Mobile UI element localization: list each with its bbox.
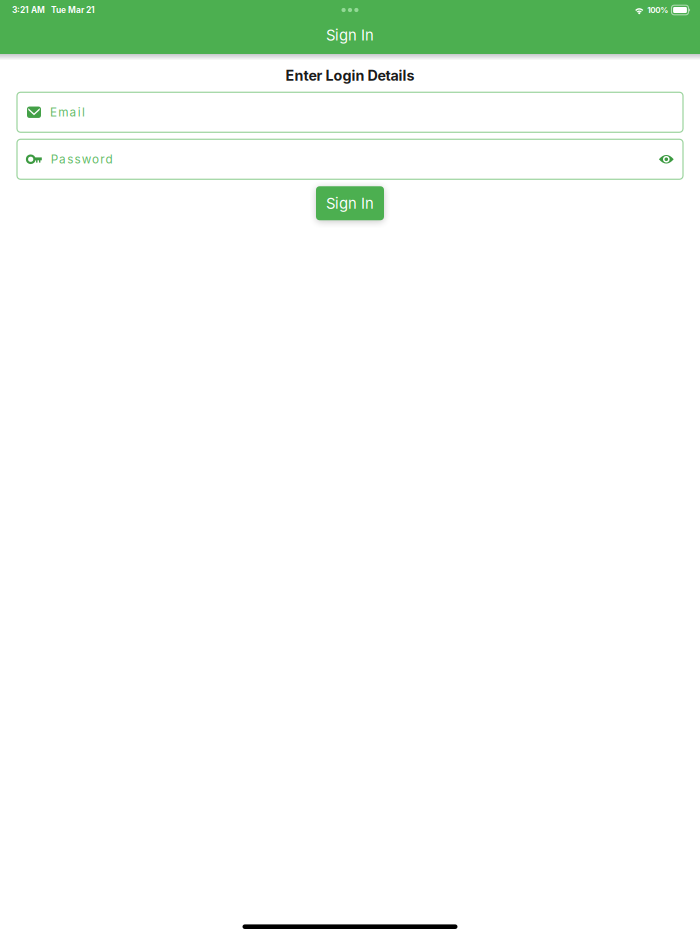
staticText: Email bbox=[50, 105, 85, 119]
staticText: 100% bbox=[647, 5, 668, 15]
button[interactable]: Sign In bbox=[316, 186, 384, 220]
button[interactable]: Show password bbox=[651, 146, 674, 173]
staticText: Password bbox=[51, 152, 113, 166]
button[interactable]: Password bbox=[17, 139, 683, 179]
staticText: Sign In bbox=[326, 26, 374, 44]
staticText: 3:21 AM Tue Mar 21 bbox=[12, 5, 95, 15]
staticText: Sign In bbox=[326, 194, 374, 212]
staticText: Enter Login Details bbox=[285, 67, 414, 84]
button[interactable]: Email bbox=[17, 92, 683, 132]
